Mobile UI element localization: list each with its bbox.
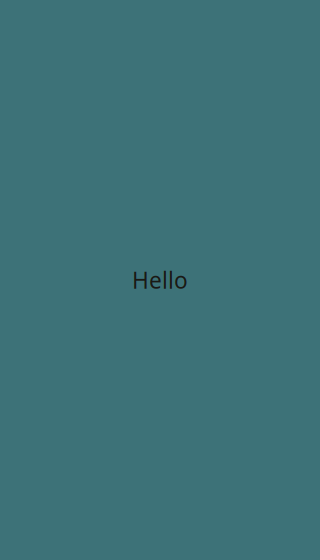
- staticText: Hello: [132, 265, 188, 295]
